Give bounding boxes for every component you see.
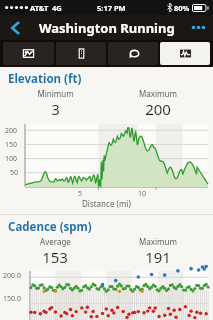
staticText: 200 [145,99,171,119]
staticText: 3 [51,99,60,119]
staticText: Average [40,236,71,247]
button[interactable]: Details [56,42,106,65]
staticText: 100 [5,154,18,164]
staticText: 5 [78,189,83,199]
staticText: Elevation (ft) [8,71,82,87]
button[interactable]: Back [0,15,30,40]
staticText: 191 [145,247,171,267]
staticText: 5:17 PM [97,3,126,13]
button[interactable]: More options [183,15,213,40]
staticText: 4G [52,3,62,13]
staticText: Cadence (spm) [8,219,92,235]
button[interactable]: Laps [108,42,158,65]
staticText: 150 [5,140,18,150]
staticText: Washington Running [39,19,175,37]
staticText: 200 [5,126,18,136]
staticText: AT&T [30,3,49,13]
staticText: 10 [138,189,147,199]
staticText: Maximum [139,236,177,247]
button[interactable]: Charts [160,42,210,65]
staticText: Distance (mi) [82,198,131,209]
staticText: 150.0 [3,294,21,304]
staticText: 50 [10,168,19,178]
staticText: Maximum [139,88,177,99]
staticText: 80% [174,3,190,13]
staticText: 153 [42,247,68,267]
button[interactable]: Map [3,42,54,65]
staticText: Minimum [37,88,74,99]
staticText: 200.0 [3,271,21,281]
